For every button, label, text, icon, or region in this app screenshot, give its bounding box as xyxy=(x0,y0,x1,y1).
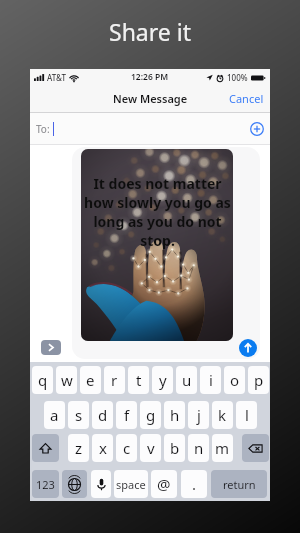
button[interactable]: f xyxy=(116,401,137,429)
staticText: o xyxy=(230,370,240,390)
button[interactable]: Switch keyboard xyxy=(62,470,87,498)
button[interactable]: return xyxy=(211,470,267,498)
button[interactable]: y xyxy=(152,366,173,394)
button[interactable]: w xyxy=(56,366,77,394)
button[interactable]: . xyxy=(181,470,207,498)
button[interactable]: z xyxy=(68,434,89,462)
button[interactable]: Shift xyxy=(32,434,59,462)
button[interactable]: o xyxy=(224,366,245,394)
staticText: a xyxy=(50,405,59,425)
staticText: c xyxy=(123,438,131,458)
button[interactable]: Backspace xyxy=(242,434,269,462)
button[interactable]: p xyxy=(248,366,269,394)
staticText: . xyxy=(192,474,197,494)
staticText: New Message xyxy=(113,91,188,106)
staticText: l xyxy=(245,405,249,425)
staticText: v xyxy=(147,438,155,458)
staticText: Cancel xyxy=(229,91,264,106)
staticText: space xyxy=(116,477,146,492)
staticText: m xyxy=(215,438,230,458)
staticText: u xyxy=(182,370,192,390)
staticText: To: xyxy=(36,122,50,136)
staticText: 12:26 PM xyxy=(131,71,169,83)
button[interactable]: Cancel xyxy=(223,86,270,111)
button[interactable]: k xyxy=(212,401,233,429)
staticText: Share it xyxy=(109,16,191,47)
staticText: x xyxy=(99,438,107,458)
button[interactable]: b xyxy=(164,434,185,462)
button[interactable]: Dictation xyxy=(91,470,111,498)
staticText: 123 xyxy=(36,477,55,492)
button[interactable]: 123 xyxy=(32,470,59,498)
staticText: It does not matter xyxy=(93,174,222,193)
staticText: i xyxy=(209,370,213,390)
staticText: d xyxy=(98,405,108,425)
staticText: j xyxy=(197,405,201,425)
staticText: z xyxy=(75,438,83,458)
button[interactable]: m xyxy=(212,434,233,462)
button[interactable]: u xyxy=(176,366,197,394)
staticText: return xyxy=(223,477,256,492)
button[interactable]: r xyxy=(104,366,125,394)
button[interactable]: @ xyxy=(151,470,177,498)
button[interactable]: Add contact xyxy=(250,122,264,136)
button[interactable]: g xyxy=(140,401,161,429)
staticText: q xyxy=(38,370,48,390)
staticText: w xyxy=(61,370,73,390)
staticText: k xyxy=(218,405,227,425)
staticText: 100% xyxy=(227,72,248,83)
staticText: y xyxy=(159,370,167,390)
staticText: r xyxy=(111,370,118,390)
button[interactable]: space xyxy=(114,470,148,498)
staticText: h xyxy=(170,405,180,425)
button[interactable]: c xyxy=(116,434,137,462)
button[interactable]: d xyxy=(92,401,113,429)
button[interactable]: i xyxy=(200,366,221,394)
staticText: s xyxy=(75,405,83,425)
button[interactable]: More options xyxy=(41,340,61,355)
button[interactable]: v xyxy=(140,434,161,462)
staticText: b xyxy=(170,438,180,458)
button[interactable]: h xyxy=(164,401,185,429)
button[interactable]: n xyxy=(188,434,209,462)
staticText: f xyxy=(124,405,130,425)
staticText: AT&T xyxy=(47,72,66,83)
button[interactable]: e xyxy=(80,366,101,394)
button[interactable]: q xyxy=(32,366,53,394)
button[interactable]: Send xyxy=(239,339,257,357)
staticText: @ xyxy=(157,474,171,494)
staticText: n xyxy=(194,438,204,458)
staticText: e xyxy=(86,370,95,390)
staticText: long as you do not xyxy=(93,212,222,231)
staticText: how slowly you go as xyxy=(84,193,231,212)
staticText: stop. xyxy=(140,231,175,250)
button[interactable]: t xyxy=(128,366,149,394)
button[interactable]: j xyxy=(188,401,209,429)
button[interactable]: s xyxy=(68,401,89,429)
button[interactable]: x xyxy=(92,434,113,462)
button[interactable]: l xyxy=(236,401,257,429)
staticText: g xyxy=(146,405,156,425)
button[interactable]: a xyxy=(44,401,65,429)
staticText: p xyxy=(254,370,264,390)
staticText: t xyxy=(136,370,142,390)
